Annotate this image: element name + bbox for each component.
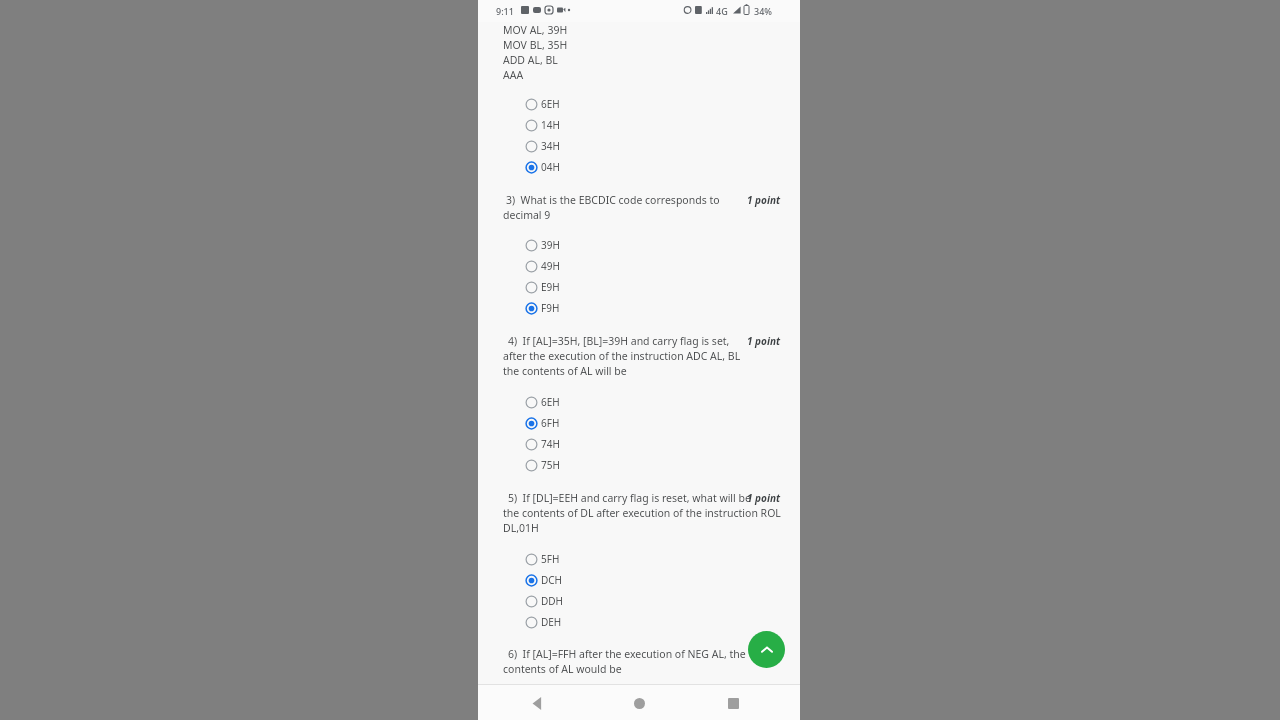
staticText: E9H <box>541 280 560 294</box>
staticText: 6FH <box>541 416 560 430</box>
staticText: 6) If [AL]=FFH after the execution of NE… <box>508 647 746 661</box>
button[interactable]: 6EH <box>525 393 645 411</box>
staticText: 4G <box>716 5 728 17</box>
staticText: after the execution of the instruction A… <box>503 349 741 363</box>
staticText: 9:11 <box>496 5 514 17</box>
button[interactable]: F9H <box>525 299 645 317</box>
button[interactable]: 49H <box>525 257 645 275</box>
staticText: 75H <box>541 458 560 472</box>
staticText: the contents of DL after execution of th… <box>503 506 781 520</box>
staticText: DDH <box>541 594 564 608</box>
staticText: 49H <box>541 259 560 273</box>
staticText: the contents of AL will be <box>503 364 627 378</box>
staticText: DCH <box>541 573 563 587</box>
button[interactable]: DCH <box>525 571 645 589</box>
staticText: 3) What is the EBCDIC code corresponds t… <box>506 193 720 207</box>
button[interactable]: 14H <box>525 116 645 134</box>
button[interactable]: Back <box>523 689 551 717</box>
staticText: 39H <box>541 238 560 252</box>
button[interactable]: 6FH <box>525 414 645 432</box>
button[interactable]: 5FH <box>525 550 645 568</box>
staticText: 04H <box>541 160 560 174</box>
button[interactable]: Scroll to top <box>748 631 785 668</box>
staticText: 14H <box>541 118 560 132</box>
staticText: 34H <box>541 139 560 153</box>
staticText: F9H <box>541 301 560 315</box>
button[interactable]: 34H <box>525 137 645 155</box>
staticText: 6EH <box>541 395 560 409</box>
button[interactable]: 75H <box>525 456 645 474</box>
button[interactable]: 39H <box>525 236 645 254</box>
staticText: 6EH <box>541 97 560 111</box>
staticText: DL,01H <box>503 521 539 535</box>
staticText: ADD AL, BL <box>503 53 558 67</box>
staticText: MOV AL, 39H <box>503 23 568 37</box>
staticText: 4) If [AL]=35H, [BL]=39H and carry flag … <box>508 334 730 348</box>
staticText: 5FH <box>541 552 560 566</box>
button[interactable]: 74H <box>525 435 645 453</box>
staticText: 1 point <box>747 193 781 207</box>
staticText: DEH <box>541 615 562 629</box>
staticText: decimal 9 <box>503 208 551 222</box>
staticText: MOV BL, 35H <box>503 38 568 52</box>
button[interactable]: E9H <box>525 278 645 296</box>
button[interactable]: Recent apps <box>719 689 747 717</box>
button[interactable]: 6EH <box>525 95 645 113</box>
staticText: 34% <box>754 5 772 17</box>
button[interactable]: 04H <box>525 158 645 176</box>
button[interactable]: Home <box>625 689 653 717</box>
staticText: contents of AL would be <box>503 662 622 676</box>
button[interactable]: DEH <box>525 613 645 631</box>
staticText: AAA <box>503 68 524 82</box>
staticText: 5) If [DL]=EEH and carry flag is reset, … <box>508 491 751 505</box>
staticText: 1 point <box>747 334 781 348</box>
staticText: 1 point <box>747 491 781 505</box>
button[interactable]: DDH <box>525 592 645 610</box>
staticText: 74H <box>541 437 560 451</box>
